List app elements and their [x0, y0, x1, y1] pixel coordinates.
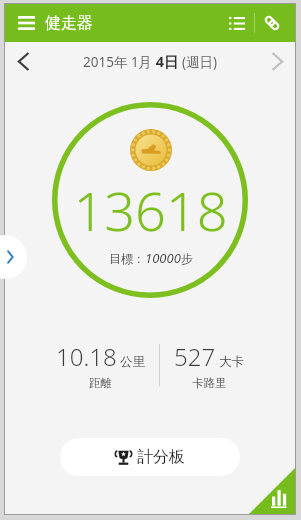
- button[interactable]: Previous day: [5, 43, 41, 79]
- button[interactable]: 計分板: [60, 438, 240, 476]
- staticText: 健走器: [45, 13, 93, 33]
- button[interactable]: Next day: [259, 43, 295, 79]
- button[interactable]: List: [220, 6, 254, 40]
- staticText: 目標：10000步: [109, 249, 193, 267]
- button[interactable]: Open side panel: [5, 235, 20, 279]
- button[interactable]: Statistics: [249, 468, 295, 514]
- staticText: 13618: [73, 173, 228, 247]
- staticText: 大卡: [219, 354, 244, 370]
- button[interactable]: Link: [255, 6, 289, 40]
- staticText: 卡路里: [192, 376, 227, 390]
- staticText: 527: [174, 340, 216, 373]
- staticText: 公里: [120, 354, 145, 370]
- staticText: 計分板: [137, 447, 185, 467]
- staticText: 距離: [89, 376, 112, 390]
- button[interactable]: Menu: [10, 7, 42, 39]
- staticText: 2015年 1月 4日 (週日): [83, 51, 218, 71]
- staticText: 10.18: [56, 340, 117, 373]
